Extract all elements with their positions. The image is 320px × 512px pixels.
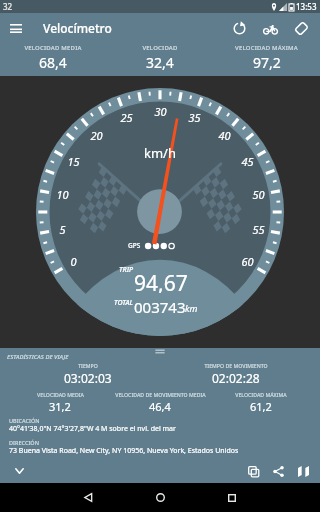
staticText: TRIP <box>119 265 134 275</box>
staticText: km/h <box>144 144 176 160</box>
button[interactable]: Vehicle mode <box>255 13 286 44</box>
staticText: TOTAL <box>114 298 134 308</box>
staticText: 31,2 <box>49 399 71 414</box>
button[interactable]: TIEMPO DE MOVIMIENTO <box>176 362 296 385</box>
staticText: 10 <box>56 187 69 202</box>
staticText: 97,2 <box>253 53 281 72</box>
button[interactable]: Recents <box>217 483 247 512</box>
button[interactable]: Back <box>73 483 103 512</box>
staticText: 003743 <box>134 297 186 315</box>
staticText: 20 <box>90 128 103 143</box>
staticText: ESTADÍSTICAS DE VIAJE <box>7 353 69 361</box>
staticText: 73 Buena Vista Road, New City, NY 10956,… <box>9 446 239 456</box>
staticText: Velocímetro <box>43 20 112 36</box>
staticText: VELOCIDAD <box>142 44 178 52</box>
staticText: 68,4 <box>39 53 67 72</box>
staticText: VELOCIDAD MÁXIMA <box>235 391 287 398</box>
button[interactable]: Copy <box>242 460 264 482</box>
button[interactable]: VELOCIDAD MEDIA <box>0 44 106 71</box>
staticText: 25 <box>120 110 133 125</box>
staticText: 55 <box>252 222 265 237</box>
staticText: GPS <box>128 241 141 250</box>
button[interactable]: VELOCIDAD MEDIA <box>0 391 120 413</box>
staticText: 32 <box>3 1 13 12</box>
button[interactable]: Share <box>267 460 289 482</box>
button[interactable]: VELOCIDAD MÁXIMA <box>201 391 320 413</box>
staticText: 45 <box>241 154 254 169</box>
staticText: VELOCIDAD MEDIA <box>24 44 82 52</box>
button[interactable]: Menu <box>0 13 31 44</box>
staticText: 03:02:03 <box>64 370 112 386</box>
staticText: 0 <box>70 254 77 269</box>
button[interactable]: VELOCIDAD MÁXIMA <box>213 44 320 71</box>
button[interactable]: VELOCIDAD <box>106 44 213 71</box>
staticText: 40 <box>218 128 231 143</box>
staticText: 61,2 <box>250 399 272 414</box>
staticText: 60 <box>241 254 254 269</box>
button[interactable]: VELOCIDAD DE MOVIMIENTO MEDIA <box>100 391 220 413</box>
staticText: UBICACIÓN <box>9 417 40 424</box>
staticText: 94,67 <box>134 269 188 293</box>
staticText: 30 <box>154 104 167 119</box>
button[interactable]: Collapse <box>8 460 30 482</box>
staticText: 35 <box>188 110 201 125</box>
staticText: DIRECCIÓN <box>9 439 39 446</box>
button[interactable]: TIEMPO <box>28 362 148 385</box>
staticText: VELOCIDAD MÁXIMA <box>235 44 298 52</box>
staticText: 40°41'38,0"N 74°3'27,8"W 4 M sobre el nv… <box>9 424 176 434</box>
staticText: TIEMPO DE MOVIMIENTO <box>204 362 268 369</box>
staticText: TIEMPO <box>78 362 98 369</box>
staticText: VELOCIDAD MEDIA <box>37 391 84 398</box>
button[interactable]: Home <box>145 483 175 512</box>
staticText: 5 <box>59 222 66 237</box>
staticText: km <box>185 302 198 314</box>
button[interactable]: Reset <box>224 13 255 44</box>
staticText: 02:02:28 <box>212 370 260 386</box>
button[interactable]: Rotate screen <box>286 13 317 44</box>
staticText: VELOCIDAD DE MOVIMIENTO MEDIA <box>115 391 206 398</box>
staticText: 50 <box>252 187 265 202</box>
staticText: 46,4 <box>149 399 171 414</box>
staticText: 13:53 <box>296 1 317 12</box>
button[interactable]: Map <box>292 460 314 482</box>
staticText: 15 <box>67 154 80 169</box>
staticText: 32,4 <box>146 53 174 72</box>
